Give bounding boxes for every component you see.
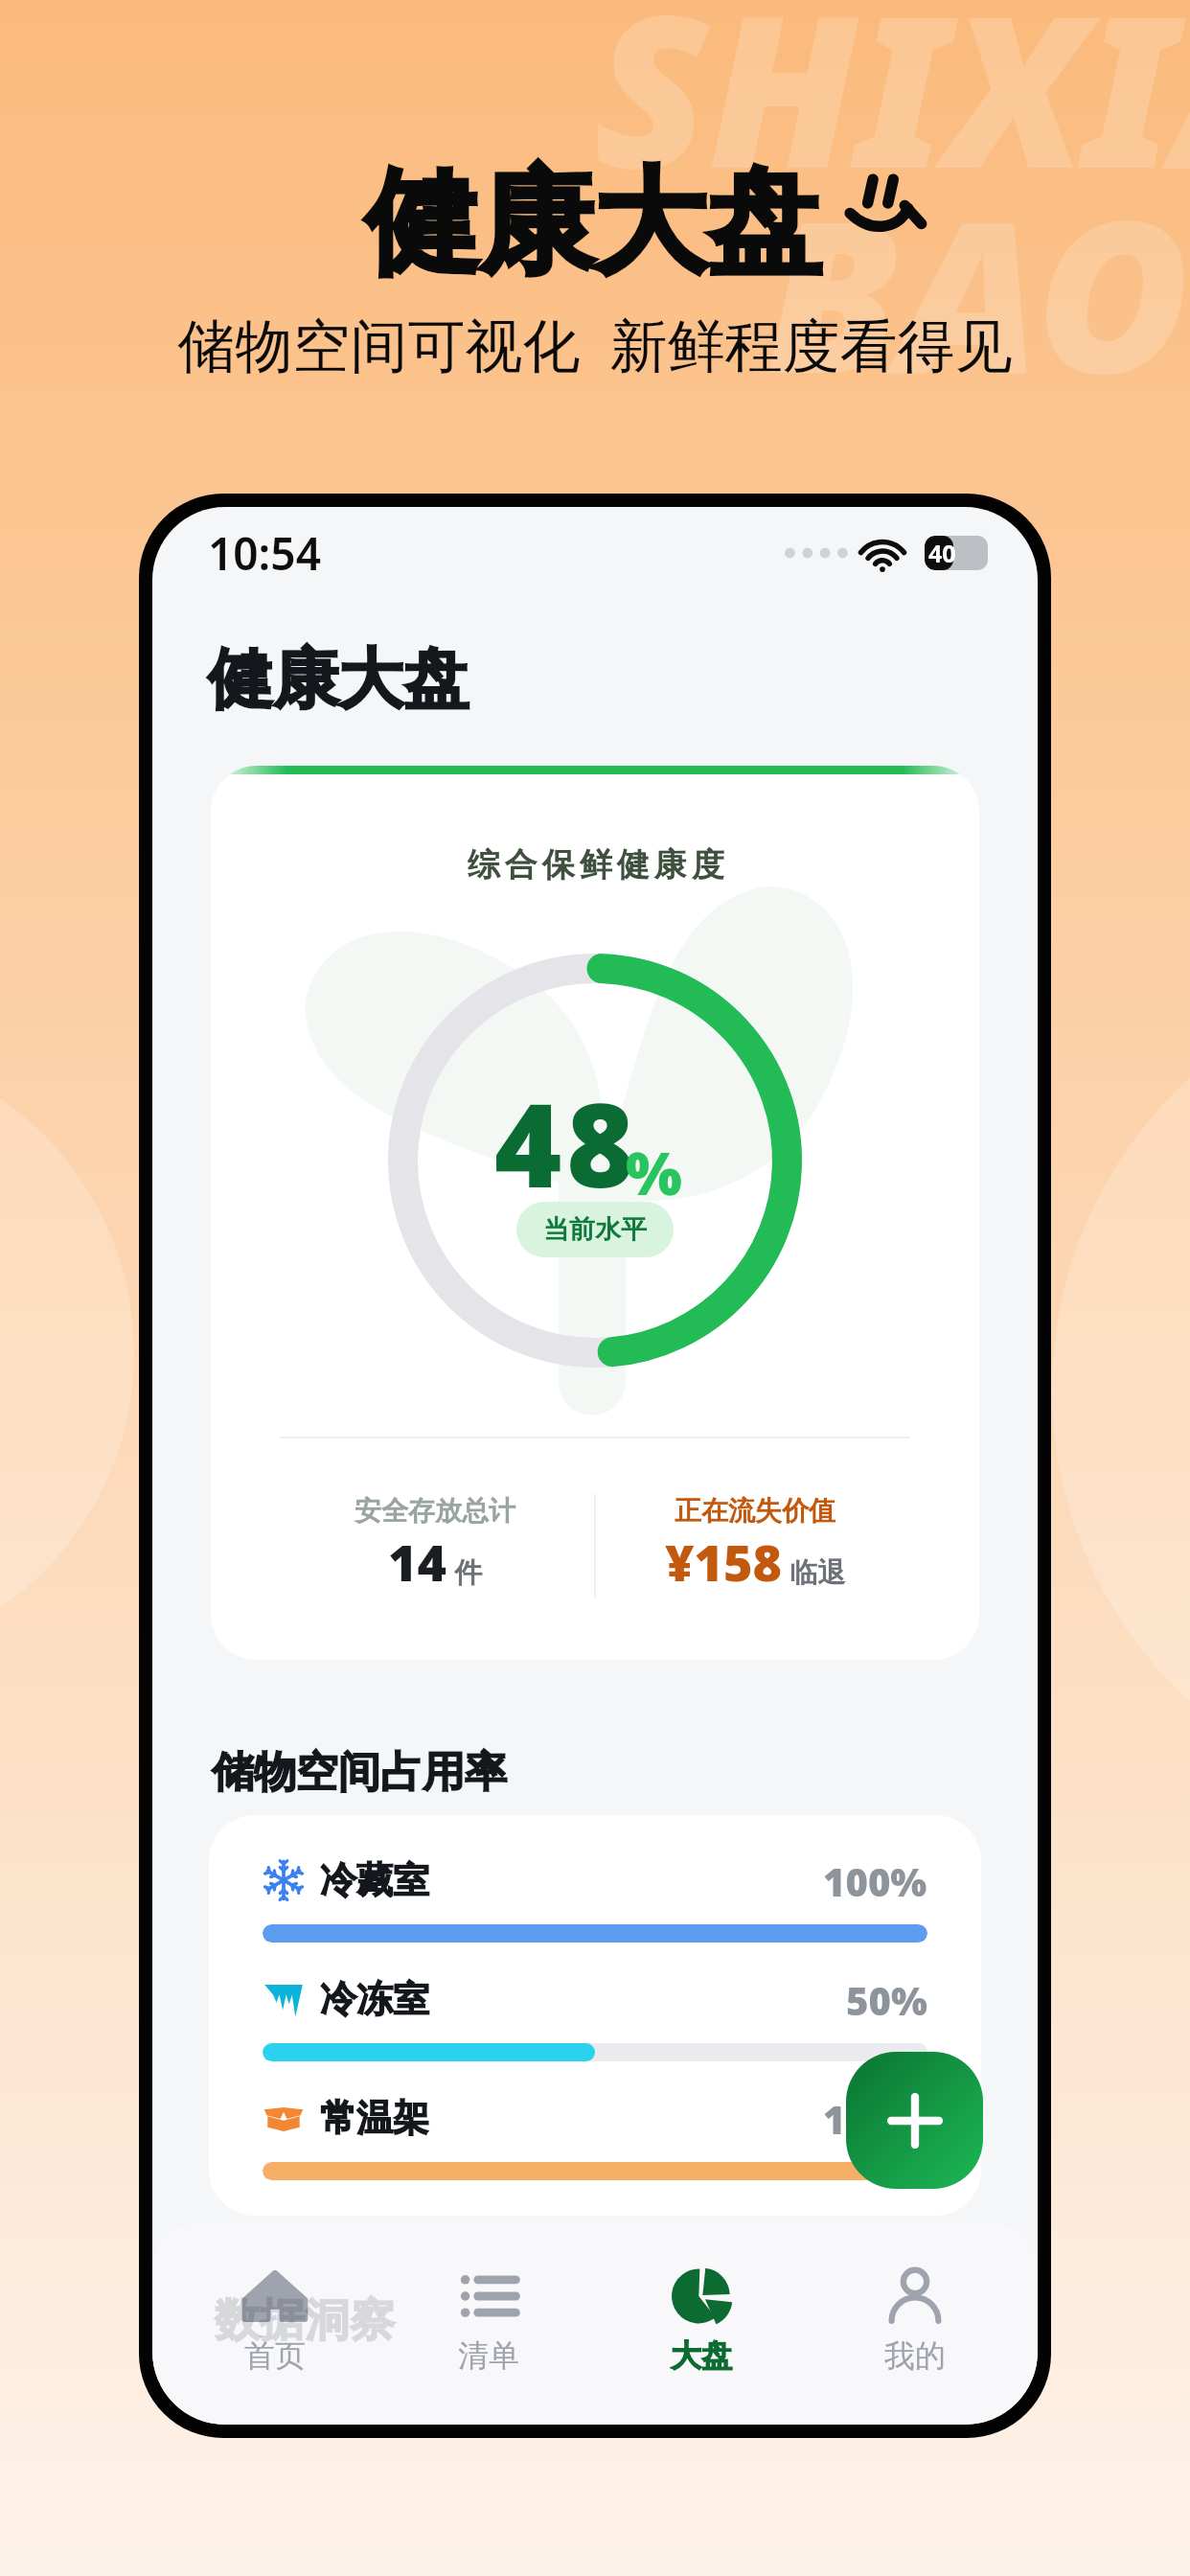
staticText: 我的 bbox=[884, 2336, 946, 2375]
staticText: 100% bbox=[823, 1855, 927, 1905]
staticText: 健康大盘 bbox=[208, 639, 469, 722]
button[interactable]: 正在流失价值 bbox=[596, 1494, 914, 1596]
staticText: BAO bbox=[767, 149, 1190, 434]
staticText: % bbox=[626, 1132, 682, 1212]
button[interactable]: 冷藏室 bbox=[263, 1855, 927, 1943]
staticText: 冷藏室 bbox=[320, 1857, 429, 1903]
button[interactable]: 安全存放总计 bbox=[276, 1494, 594, 1596]
staticText: 10:54 bbox=[208, 523, 321, 584]
staticText: SHIXIAN bbox=[594, 0, 1190, 229]
staticText: 综合保鲜健康度 bbox=[465, 844, 726, 885]
staticText: 健康大盘 bbox=[365, 151, 821, 295]
staticText: 数据洞察 bbox=[215, 2292, 395, 2349]
button[interactable]: 清单 bbox=[398, 2265, 580, 2375]
staticText: 正在流失价值 bbox=[675, 1494, 835, 1528]
staticText: 临退 bbox=[790, 1555, 845, 1591]
staticText: 安全存放总计 bbox=[355, 1494, 515, 1528]
button[interactable]: 常温架 bbox=[263, 2093, 927, 2180]
button[interactable]: 首页 bbox=[184, 2265, 366, 2375]
staticText: 件 bbox=[454, 1555, 482, 1591]
staticText: 储物空间可视化 新鲜程度看得见 bbox=[0, 305, 1190, 383]
staticText: 40 bbox=[928, 537, 956, 569]
button[interactable]: Add item bbox=[846, 2052, 983, 2189]
staticText: 100% bbox=[823, 2093, 927, 2143]
button[interactable]: 我的 bbox=[824, 2265, 1006, 2375]
staticText: 首页 bbox=[244, 2336, 306, 2375]
staticText: 常温架 bbox=[320, 2095, 429, 2141]
button[interactable]: 冷冻室 bbox=[263, 1974, 927, 2061]
staticText: 14 bbox=[388, 1528, 446, 1596]
staticText: 当前水平 bbox=[543, 1213, 647, 1246]
staticText: 清单 bbox=[458, 2336, 519, 2375]
button[interactable]: 大盘 bbox=[610, 2265, 792, 2375]
button[interactable]: 当前水平 bbox=[543, 1213, 647, 1246]
staticText: 储物空间占用率 bbox=[212, 1746, 507, 1799]
staticText: ¥158 bbox=[665, 1528, 782, 1596]
staticText: 48 bbox=[494, 1065, 639, 1221]
staticText: 大盘 bbox=[671, 2336, 732, 2375]
staticText: 50% bbox=[846, 1974, 927, 2024]
staticText: 冷冻室 bbox=[320, 1976, 429, 2022]
